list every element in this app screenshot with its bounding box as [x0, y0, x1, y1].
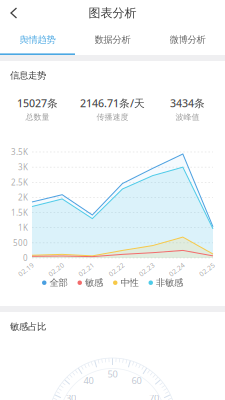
button[interactable]: 返回	[0, 1, 28, 25]
staticText: 3.5K	[11, 147, 28, 157]
staticText: 信息走势	[10, 70, 46, 81]
staticText: 敏感占比	[10, 321, 46, 332]
staticText: 60	[131, 374, 141, 387]
staticText: 传播速度	[96, 112, 128, 122]
staticText: 02.25	[198, 265, 216, 274]
staticText: 0	[23, 253, 28, 263]
staticText: 2K	[18, 192, 28, 203]
staticText: 02.22	[107, 265, 125, 274]
staticText: 1.5K	[11, 207, 28, 218]
staticText: 500	[13, 237, 28, 248]
staticText: 非敏感	[156, 277, 183, 288]
staticText: 30	[66, 392, 76, 400]
staticText: 全部	[49, 277, 67, 288]
staticText: 数据分析	[94, 34, 130, 45]
staticText: 02.20	[47, 265, 65, 274]
staticText: 总数量	[25, 112, 49, 122]
staticText: 1K	[18, 222, 28, 233]
button[interactable]: 舆情趋势	[0, 26, 75, 55]
staticText: 2.5K	[11, 177, 28, 188]
staticText: 图表分析	[88, 6, 136, 20]
staticText: 波峰值	[175, 112, 199, 122]
staticText: 舆情趋势	[19, 34, 55, 45]
staticText: 02.21	[77, 265, 95, 274]
staticText: 2146.71条/天	[80, 96, 145, 110]
staticText: 3K	[18, 162, 28, 172]
button[interactable]: 数据分析	[75, 26, 150, 55]
staticText: 02.19	[17, 265, 35, 274]
staticText: 3434条	[170, 96, 205, 110]
staticText: 02.23	[138, 265, 156, 274]
button[interactable]: 微博分析	[150, 26, 225, 55]
staticText: 15027条	[17, 96, 58, 110]
staticText: 敏感	[85, 277, 103, 288]
staticText: 中性	[120, 277, 138, 288]
staticText: 70	[149, 392, 159, 400]
staticText: 02.24	[168, 265, 186, 274]
staticText: 50	[107, 368, 117, 380]
staticText: 微博分析	[169, 34, 205, 45]
staticText: 40	[83, 374, 93, 387]
